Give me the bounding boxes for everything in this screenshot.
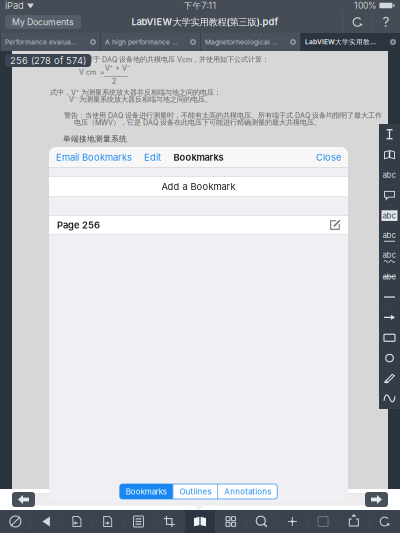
button[interactable]: Rectangle <box>379 327 400 348</box>
staticText: 单端接地测量系统 <box>63 134 127 144</box>
button[interactable]: Annotations <box>218 484 277 499</box>
staticText: V cm = <box>79 68 105 76</box>
staticText: Edit <box>144 152 161 163</box>
staticText: abc <box>382 170 396 180</box>
button[interactable]: Close <box>310 147 347 167</box>
staticText: Bookmarks <box>173 152 223 163</box>
staticText: 2 <box>112 77 116 85</box>
staticText: 256 (278 of 574) <box>10 55 86 66</box>
button[interactable]: Squiggly <box>379 246 400 267</box>
staticText: Annotations <box>224 487 271 496</box>
button[interactable]: Previous view <box>61 510 92 533</box>
button[interactable]: Back <box>31 510 62 533</box>
button[interactable]: Bookmarks <box>185 510 215 533</box>
staticText: My Documents <box>12 17 74 27</box>
button[interactable]: Page 256 <box>49 215 348 235</box>
button[interactable]: Add a Bookmark <box>49 176 348 197</box>
button[interactable]: Outlines <box>173 484 217 499</box>
button[interactable]: Bookmark <box>379 144 400 165</box>
staticText: abc <box>382 211 396 220</box>
staticText: Email Bookmarks <box>56 152 132 163</box>
staticText: abc <box>382 272 396 281</box>
button[interactable]: Text select <box>379 124 400 144</box>
staticText: Outlines <box>179 487 211 496</box>
button[interactable]: Previous page <box>12 492 35 507</box>
button[interactable]: Share <box>338 510 369 533</box>
staticText: V⁺ + V⁻ <box>105 64 130 72</box>
staticText: abc <box>382 250 396 260</box>
button[interactable]: Ink eraser <box>379 368 400 389</box>
staticText: 量相对于 DAQ 设备地的共模电压 Vcm，并使用如下公式计算： <box>72 55 269 64</box>
button[interactable]: Ellipse <box>379 348 400 368</box>
button[interactable]: Magnetorheological bypa… <box>200 33 300 51</box>
staticText: 100% <box>354 0 377 11</box>
button[interactable]: Page layout <box>123 510 154 533</box>
staticText: LabVIEW大学实用教程(第三版).pdf <box>131 16 278 28</box>
button[interactable]: Select <box>308 510 338 533</box>
button[interactable]: Freehand <box>379 389 400 409</box>
staticText: 电压（MWV），它是 DAQ 设备在此电压下可能进行精确测量的最大共模电压。 <box>74 118 321 127</box>
staticText: Magnetorheological bypa… <box>205 38 278 46</box>
button[interactable]: Bookmarks <box>120 484 173 499</box>
staticText: A high performance mag… <box>105 38 178 46</box>
staticText: Add a Bookmark <box>161 181 235 192</box>
staticText: LabVIEW大学实用教程(第… <box>305 38 378 46</box>
button[interactable]: Pan <box>277 510 308 533</box>
staticText: 警告：当使用 DAQ 设备进行测量时，不能有太高的共模电压。所有端子式 DAQ … <box>64 111 382 120</box>
button[interactable]: Edit <box>138 147 167 167</box>
button[interactable]: Brightness <box>0 510 31 533</box>
button[interactable]: Performance evaluation o… <box>0 33 100 51</box>
staticText: iPad <box>5 0 24 11</box>
staticText: Page 256 <box>57 219 100 231</box>
button[interactable]: Reload <box>343 11 371 33</box>
button[interactable]: Reload <box>369 510 400 533</box>
button[interactable]: Line <box>379 287 400 307</box>
staticText: Performance evaluation o… <box>5 38 78 46</box>
button[interactable]: My Documents <box>5 15 81 29</box>
staticText: V⁻ 为测量系统放大器反相端与地之间的电压。 <box>69 95 212 104</box>
button[interactable]: Search <box>246 510 277 533</box>
button[interactable]: Next page <box>365 492 388 507</box>
staticText: 式中，V⁺ 为测量系统放大器非反相端与地之间的电压； <box>50 88 221 97</box>
button[interactable]: Arrow <box>379 307 400 328</box>
button[interactable]: Text note <box>379 165 400 185</box>
button[interactable]: Help <box>372 11 400 33</box>
button[interactable]: Thumbnails <box>215 510 246 533</box>
button[interactable]: Crop <box>154 510 185 533</box>
staticText: Bookmarks <box>126 487 167 496</box>
button[interactable]: A high performance mag… <box>100 33 200 51</box>
button[interactable]: LabVIEW大学实用教程(第… <box>300 33 400 51</box>
button[interactable]: Next view <box>92 510 123 533</box>
staticText: 下午7:11 <box>183 0 216 11</box>
staticText: Close <box>316 152 341 163</box>
button[interactable]: Sticky note <box>379 185 400 205</box>
staticText: ? <box>382 14 389 30</box>
staticText: abc <box>382 230 396 240</box>
button[interactable]: Strikeout <box>379 266 400 287</box>
button[interactable]: Highlight <box>379 205 400 226</box>
button[interactable]: Underline <box>379 226 400 246</box>
button[interactable]: Email Bookmarks <box>50 147 138 167</box>
